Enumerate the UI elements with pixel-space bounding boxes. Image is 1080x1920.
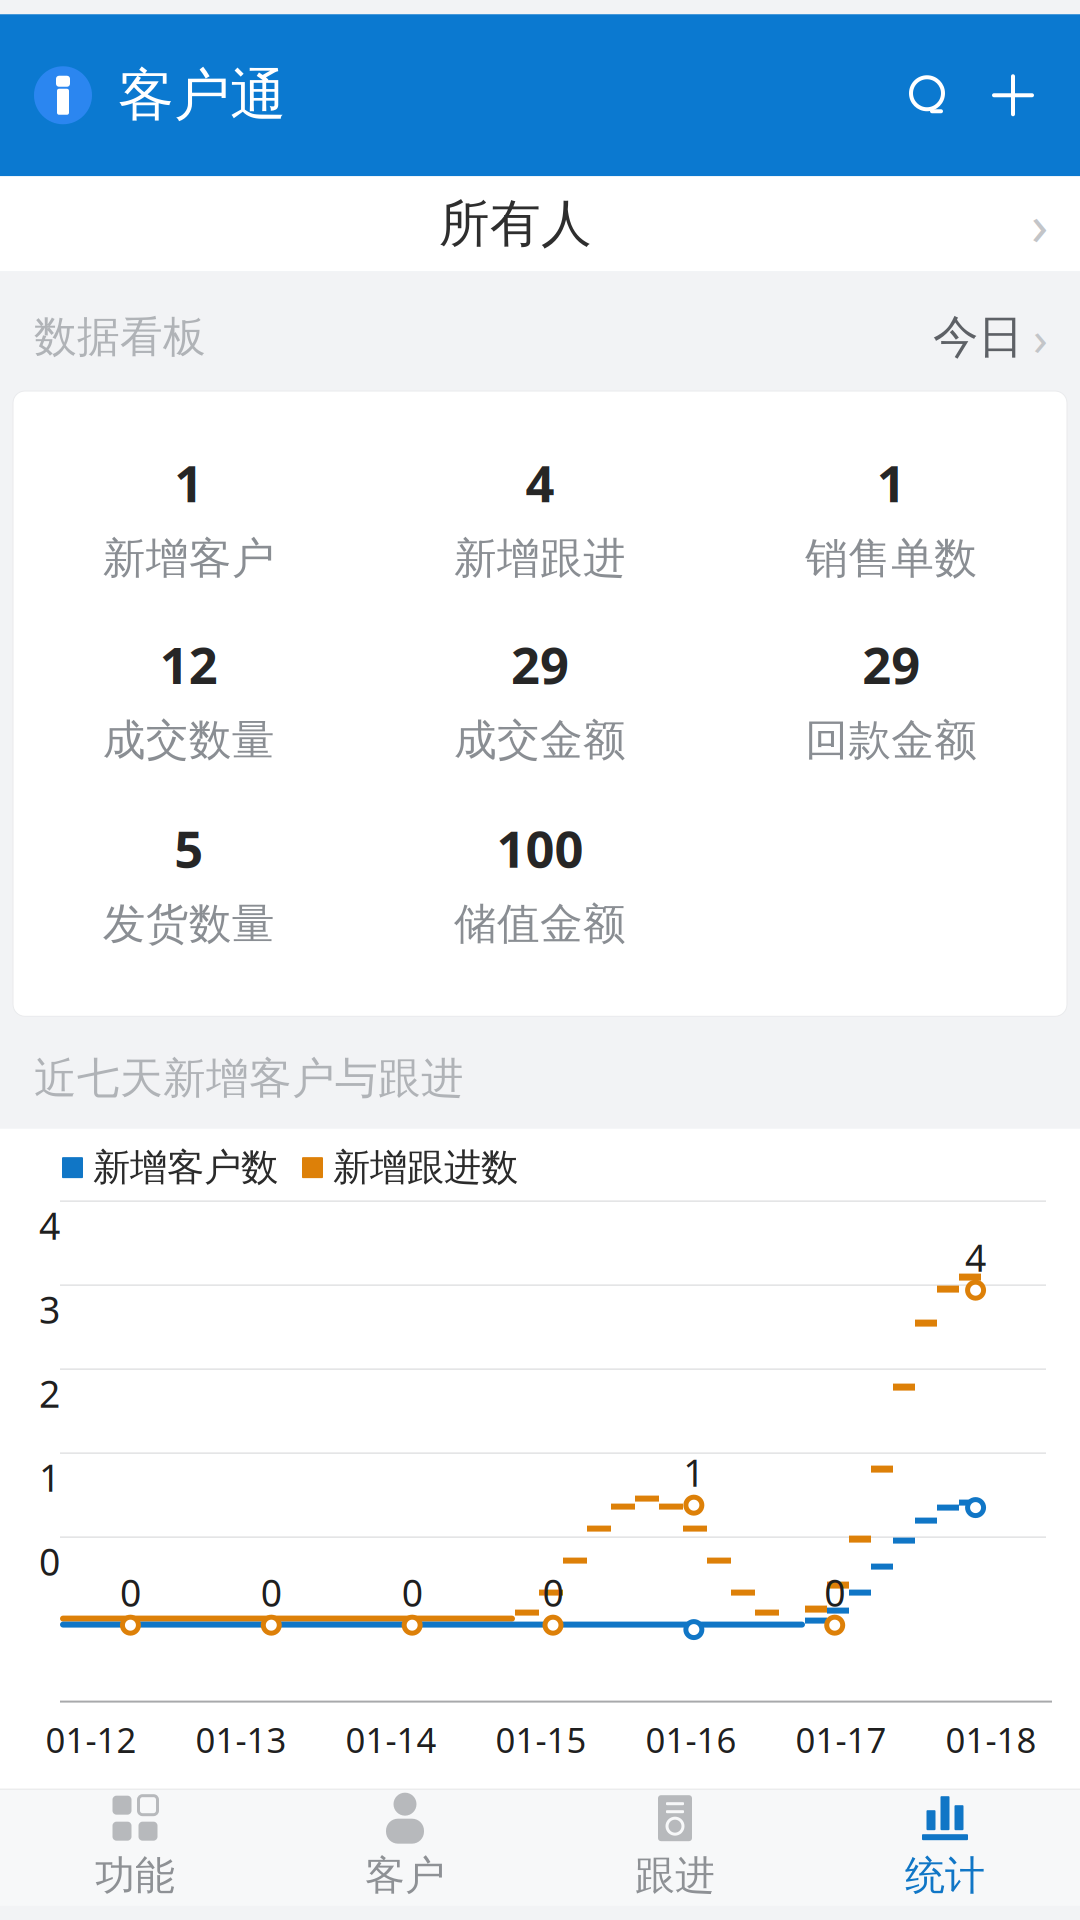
staticText: 回款金额 xyxy=(805,714,977,766)
staticText: 01-15 xyxy=(495,1717,586,1763)
staticText: 01-16 xyxy=(645,1717,736,1763)
staticText: 1 xyxy=(174,449,203,516)
staticText: 发货数量 xyxy=(103,898,275,950)
staticText: 新增客户 xyxy=(103,532,275,585)
staticText: 100 xyxy=(496,814,583,882)
staticText: 2 xyxy=(39,1369,60,1418)
staticText: 4 xyxy=(965,1233,986,1282)
staticText: 4 xyxy=(525,449,554,516)
staticText: 12 xyxy=(160,631,218,698)
button[interactable]: 所有人 xyxy=(0,176,1080,271)
staticText: 0 xyxy=(39,1537,60,1586)
staticText: 29 xyxy=(511,631,569,698)
staticText: 功能 xyxy=(95,1851,175,1900)
staticText: 0 xyxy=(120,1568,141,1617)
staticText: 储值金额 xyxy=(454,898,626,950)
staticText: 1 xyxy=(683,1448,704,1497)
staticText: 0 xyxy=(261,1568,282,1617)
staticText: 01-18 xyxy=(945,1717,1036,1763)
staticText: 近七天新增客户与跟进 xyxy=(34,1052,464,1105)
staticText: 3 xyxy=(39,1285,60,1334)
staticText: 0 xyxy=(824,1568,845,1617)
staticText: 今日 xyxy=(933,309,1023,365)
staticText: 01-14 xyxy=(345,1717,436,1763)
staticText: 成交金额 xyxy=(454,714,626,766)
button[interactable]: 客户 xyxy=(270,1783,540,1912)
staticText: 29 xyxy=(862,631,920,698)
staticText: 统计 xyxy=(905,1851,985,1900)
staticText: 5 xyxy=(174,814,203,882)
staticText: 0 xyxy=(542,1568,563,1617)
staticText: 0 xyxy=(402,1568,423,1617)
staticText: 4 xyxy=(39,1201,60,1250)
staticText: 所有人 xyxy=(439,193,592,255)
staticText: › xyxy=(1033,305,1048,369)
staticText: 新增客户数 xyxy=(93,1145,278,1191)
button[interactable]: 添加 xyxy=(970,60,1056,130)
button[interactable]: 统计 xyxy=(810,1783,1080,1912)
staticText: 新增跟进 xyxy=(454,532,626,585)
staticText: 客户 xyxy=(365,1851,445,1900)
staticText: 销售单数 xyxy=(805,532,977,585)
button[interactable]: 今日 xyxy=(933,305,1048,369)
staticText: 1 xyxy=(877,449,906,516)
staticText: 01-13 xyxy=(195,1717,286,1763)
staticText: 数据看板 xyxy=(34,311,206,363)
staticText: 成交数量 xyxy=(103,714,275,766)
staticText: › xyxy=(1031,187,1048,261)
staticText: 01-17 xyxy=(795,1717,886,1763)
staticText: 新增跟进数 xyxy=(333,1145,518,1191)
button[interactable]: 跟进 xyxy=(540,1783,810,1912)
staticText: 客户通 xyxy=(118,61,286,130)
staticText: 跟进 xyxy=(635,1851,715,1900)
staticText: 1 xyxy=(39,1453,60,1502)
staticText: 01-12 xyxy=(45,1717,136,1763)
button[interactable]: 搜索 xyxy=(884,60,970,130)
button[interactable]: 功能 xyxy=(0,1783,270,1912)
